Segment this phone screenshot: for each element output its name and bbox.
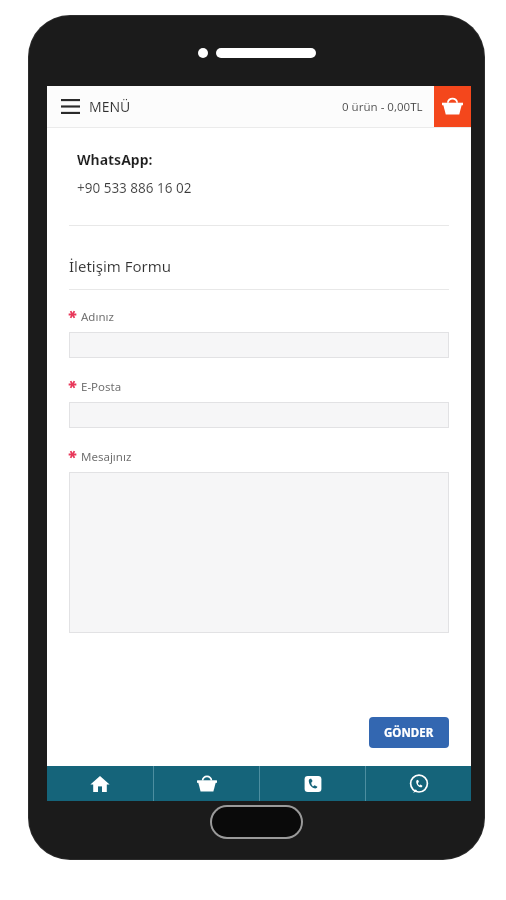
staticText: WhatsApp: bbox=[77, 150, 153, 169]
button[interactable]: Menu bbox=[47, 86, 139, 127]
button[interactable]: GÖNDER bbox=[369, 717, 449, 748]
staticText: +90 533 886 16 02 bbox=[77, 179, 192, 197]
staticText: Mesajınız bbox=[81, 449, 132, 465]
staticText: Adınız bbox=[81, 309, 114, 325]
button[interactable]: Home bbox=[47, 766, 153, 801]
staticText: MENÜ bbox=[89, 97, 131, 116]
staticText: İletişim Formu bbox=[69, 256, 172, 276]
button[interactable]: Call bbox=[260, 766, 365, 801]
button[interactable]: Cart bbox=[434, 86, 471, 127]
button[interactable]: Cart bbox=[154, 766, 259, 801]
staticText: 0 ürün - 0,00TL bbox=[342, 99, 423, 115]
button[interactable]: WhatsApp bbox=[366, 766, 471, 801]
other: Menu bbox=[61, 99, 80, 114]
button[interactable] bbox=[69, 332, 449, 358]
button[interactable]: Menu bbox=[47, 86, 471, 127]
staticText: E-Posta bbox=[81, 379, 122, 395]
staticText: GÖNDER bbox=[384, 725, 434, 741]
button[interactable] bbox=[69, 402, 449, 428]
